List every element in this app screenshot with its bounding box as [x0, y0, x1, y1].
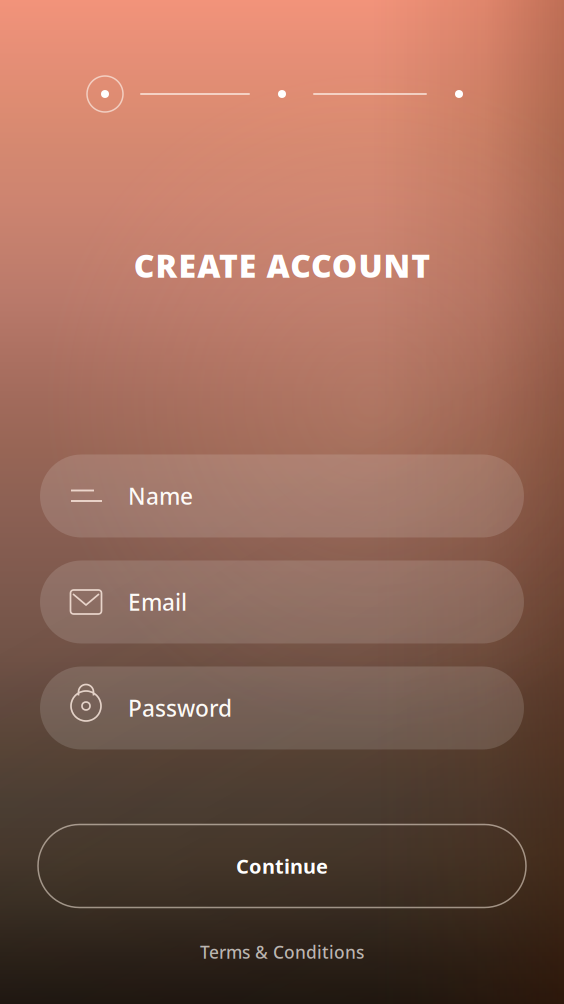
staticText: Continue [236, 853, 328, 879]
button[interactable]: Terms & Conditions [200, 940, 364, 963]
button[interactable]: Continue [38, 824, 526, 907]
staticText: Name [128, 481, 193, 511]
staticText: Terms & Conditions [200, 940, 364, 963]
staticText: CREATE ACCOUNT [134, 244, 430, 286]
button[interactable]: Email [40, 560, 524, 643]
button[interactable]: Password [40, 666, 524, 749]
staticText: Password [128, 693, 232, 723]
staticText: Email [128, 587, 187, 617]
button[interactable]: Name [40, 454, 524, 537]
